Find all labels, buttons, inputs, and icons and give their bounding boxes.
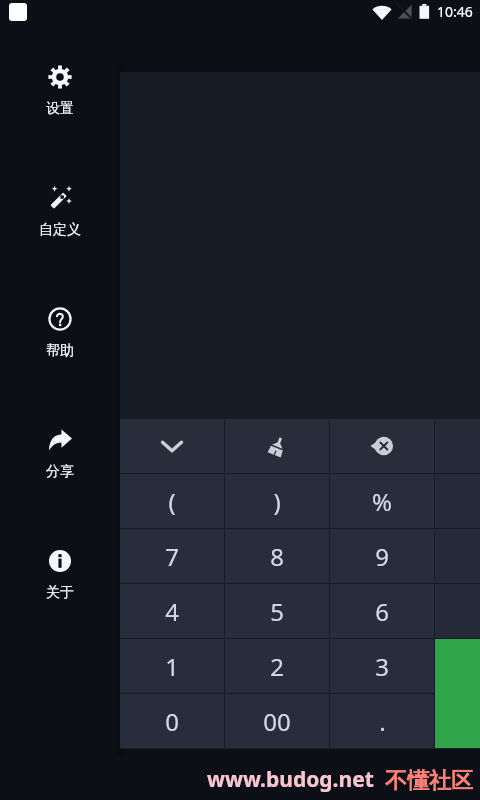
staticText: 关于 <box>0 584 120 602</box>
staticText: 10:46 <box>437 2 473 21</box>
staticText: 7 <box>165 540 179 573</box>
button[interactable]: 分享 <box>0 413 120 467</box>
staticText: 00 <box>263 705 291 738</box>
button[interactable]: Collapse <box>120 419 224 473</box>
staticText: 8 <box>270 540 284 573</box>
staticText: 0 <box>165 705 179 738</box>
button[interactable]: Clear <box>225 419 329 473</box>
staticText: ( <box>168 485 176 518</box>
button[interactable]: 7 <box>120 529 224 583</box>
staticText: 不懂社区 <box>385 767 473 795</box>
staticText: 3 <box>375 650 389 683</box>
staticText: 设置 <box>0 100 120 118</box>
staticText: % <box>372 485 392 518</box>
staticText: ) <box>273 485 281 518</box>
button[interactable]: 自定义 <box>0 171 120 225</box>
button[interactable]: 9 <box>330 529 434 583</box>
button[interactable]: % <box>330 474 434 528</box>
button[interactable]: . <box>330 694 434 748</box>
staticText: 5 <box>270 595 284 628</box>
button[interactable]: 帮助 <box>0 292 120 346</box>
button[interactable]: 8 <box>225 529 329 583</box>
button[interactable]: 00 <box>225 694 329 748</box>
button[interactable]: 0 <box>120 694 224 748</box>
button[interactable]: 设置 <box>0 50 120 104</box>
staticText: 自定义 <box>0 221 120 239</box>
button[interactable]: 2 <box>225 639 329 693</box>
staticText: 帮助 <box>0 342 120 360</box>
button[interactable]: Backspace <box>330 419 434 473</box>
button[interactable]: 4 <box>120 584 224 638</box>
button[interactable]: 3 <box>330 639 434 693</box>
staticText: www.budog.net <box>207 765 374 794</box>
staticText: 2 <box>270 650 284 683</box>
button[interactable]: 5 <box>225 584 329 638</box>
button[interactable]: ( <box>120 474 224 528</box>
staticText: 6 <box>375 595 389 628</box>
staticText: 9 <box>375 540 389 573</box>
button[interactable]: 6 <box>330 584 434 638</box>
button[interactable]: 1 <box>120 639 224 693</box>
staticText: 4 <box>165 595 179 628</box>
staticText: 1 <box>165 650 179 683</box>
staticText: 分享 <box>0 463 120 481</box>
staticText: . <box>379 705 386 738</box>
button[interactable]: ) <box>225 474 329 528</box>
button[interactable]: 关于 <box>0 534 120 588</box>
